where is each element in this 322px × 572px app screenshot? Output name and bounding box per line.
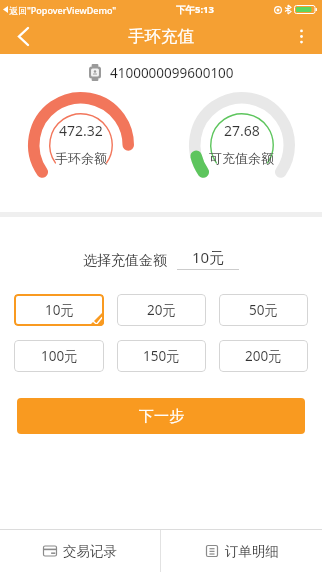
staticText: 100元 xyxy=(41,347,78,365)
button[interactable]: 150元 xyxy=(117,340,206,372)
staticText: 150元 xyxy=(143,347,180,365)
staticText: 交易记录 xyxy=(63,543,117,560)
staticText: 可充值余额 xyxy=(209,150,274,166)
button[interactable]: 50元 xyxy=(219,294,308,326)
staticText: 50元 xyxy=(249,301,278,319)
button[interactable]: More options xyxy=(280,18,322,54)
staticText: 27.68 xyxy=(224,121,260,140)
staticText: 4100000099600100 xyxy=(110,64,234,82)
button[interactable]: 10元 xyxy=(14,294,104,326)
button[interactable]: 100元 xyxy=(14,340,104,372)
staticText: 10元 xyxy=(45,301,74,319)
staticText: 20元 xyxy=(147,301,176,319)
staticText: 10元 xyxy=(192,247,225,267)
staticText: 下一步 xyxy=(139,407,184,426)
staticText: 472.32 xyxy=(59,121,103,140)
staticText: 手环余额 xyxy=(55,150,107,166)
button[interactable]: 200元 xyxy=(219,340,308,372)
button[interactable]: 下一步 xyxy=(17,398,305,434)
staticText: 200元 xyxy=(245,347,282,365)
staticText: 选择充值金额 xyxy=(83,252,167,270)
button[interactable]: 订单明细 xyxy=(161,530,322,572)
button[interactable]: 20元 xyxy=(117,294,206,326)
staticText: 订单明细 xyxy=(225,543,279,560)
button[interactable]: Back xyxy=(0,18,46,54)
staticText: 返回"PopoverViewDemo" xyxy=(9,4,117,16)
button[interactable]: 交易记录 xyxy=(0,530,160,572)
staticText: 手环充值 xyxy=(128,26,194,47)
staticText: 下午5:13 xyxy=(176,3,214,16)
